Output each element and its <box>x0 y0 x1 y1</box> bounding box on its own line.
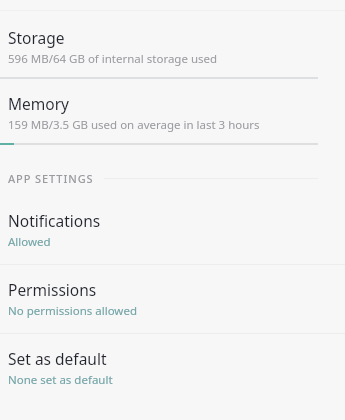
staticText: None set as default <box>8 372 113 388</box>
button[interactable]: Storage <box>0 11 345 77</box>
staticText: Permissions <box>8 279 97 300</box>
staticText: 159 MB/3.5 GB used on average in last 3 … <box>8 117 260 133</box>
button[interactable]: Set as default <box>0 334 345 402</box>
button[interactable]: Memory <box>0 79 345 143</box>
staticText: Storage <box>8 27 65 48</box>
button[interactable]: Notifications <box>0 210 345 264</box>
staticText: No permissions allowed <box>8 303 137 319</box>
staticText: Allowed <box>8 234 51 250</box>
staticText: Notifications <box>8 210 101 231</box>
button[interactable]: Permissions <box>0 265 345 333</box>
staticText: Memory <box>8 93 69 114</box>
staticText: 596 MB/64 GB of internal storage used <box>8 51 218 67</box>
staticText: APP SETTINGS <box>8 171 94 186</box>
staticText: Set as default <box>8 348 107 369</box>
